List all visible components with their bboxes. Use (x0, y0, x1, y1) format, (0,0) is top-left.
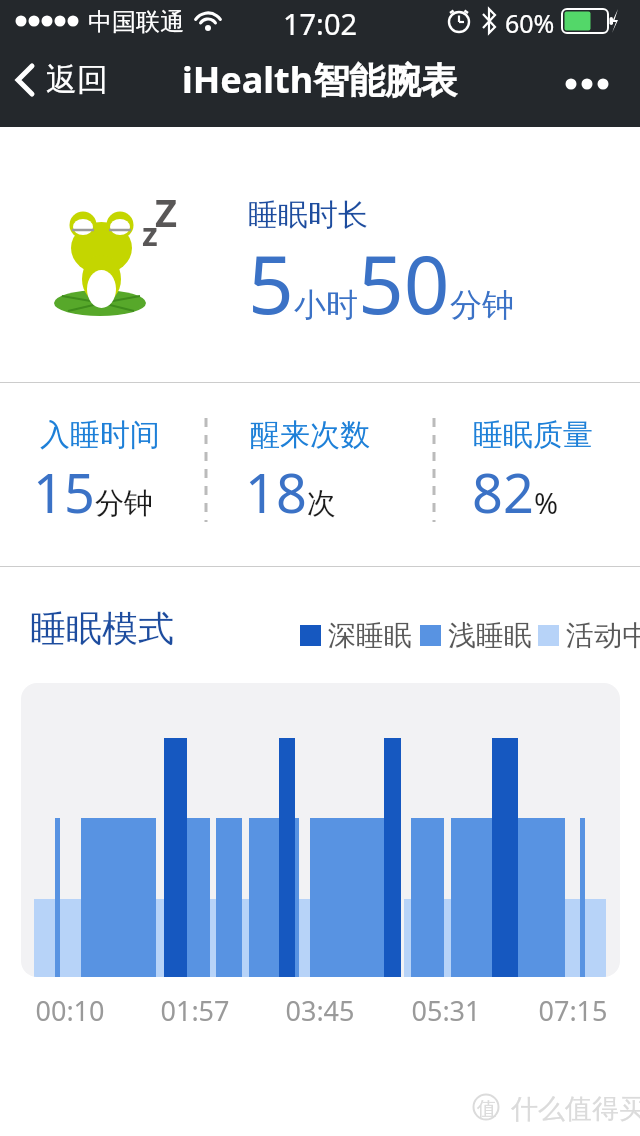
staticText: 中国联通 (88, 7, 184, 37)
staticText: 18 (245, 455, 307, 529)
staticText: 60% (505, 6, 555, 40)
staticText: 50 (358, 228, 450, 337)
button[interactable] (556, 56, 626, 112)
staticText: 醒来次数 (250, 416, 370, 454)
staticText: Z (155, 186, 178, 238)
staticText: % (534, 483, 559, 522)
staticText: 17:02 (0, 4, 640, 43)
staticText: 15 (33, 455, 95, 529)
staticText: 00:10 (20, 992, 120, 1029)
staticText: 次 (307, 485, 336, 522)
staticText: 分钟 (450, 285, 514, 325)
staticText: 小时 (294, 285, 358, 325)
staticText: 82 (472, 455, 534, 529)
staticText: 活动中 (566, 618, 640, 653)
staticText: 分钟 (95, 485, 153, 522)
staticText: 05:31 (396, 992, 496, 1029)
staticText: 睡眠模式 (30, 606, 174, 651)
staticText: z (142, 212, 158, 256)
staticText: 值 (477, 1097, 496, 1121)
button[interactable]: 返回 (12, 36, 108, 123)
staticText: 睡眠质量 (473, 416, 593, 454)
staticText: 入睡时间 (40, 416, 160, 454)
staticText: 03:45 (270, 992, 370, 1029)
staticText: 07:15 (523, 992, 623, 1029)
staticText: 01:57 (145, 992, 245, 1029)
staticText: 5 (248, 228, 294, 337)
staticText: 返回 (46, 60, 108, 99)
staticText: iHealth智能腕表 (182, 55, 458, 104)
staticText: 浅睡眠 (448, 618, 532, 653)
staticText: 睡眠时长 (248, 196, 368, 234)
staticText: 深睡眠 (328, 618, 412, 653)
staticText: 什么值得买 (511, 1092, 640, 1126)
